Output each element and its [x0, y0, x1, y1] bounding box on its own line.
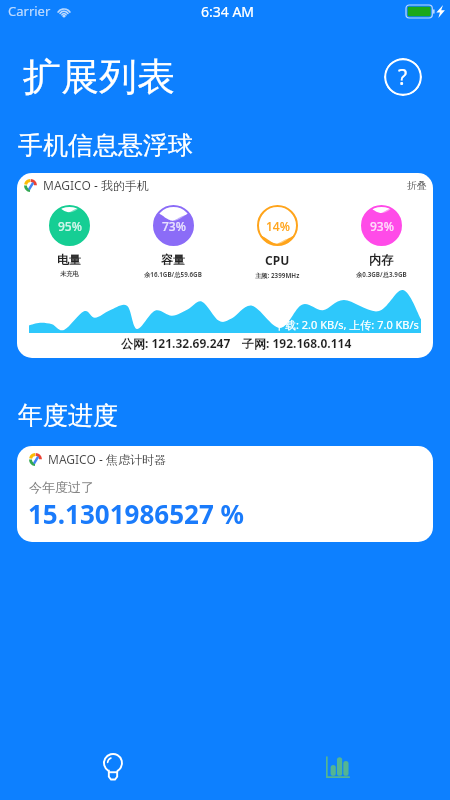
- staticText: 电量: [57, 252, 81, 267]
- staticText: 扩展列表: [23, 53, 175, 101]
- staticText: 余16.1GB/总59.6GB: [144, 270, 202, 279]
- staticText: 6:34 AM: [201, 2, 255, 21]
- staticText: ?: [398, 63, 408, 92]
- staticText: 内存: [369, 252, 393, 267]
- button[interactable]: MAGICO - 我的手机: [17, 173, 433, 358]
- staticText: 95%: [58, 218, 82, 234]
- staticText: 15.1301986527 %: [28, 496, 244, 530]
- staticText: 14%: [266, 218, 290, 234]
- staticText: 容量: [161, 252, 185, 267]
- staticText: MAGICO - 焦虑计时器: [48, 451, 166, 467]
- staticText: 手机信息悬浮球: [18, 130, 193, 161]
- staticText: 余0.3GB/总3.9GB: [356, 270, 407, 279]
- button[interactable]: Help: [384, 58, 422, 96]
- staticText: CPU: [265, 252, 290, 268]
- staticText: 73%: [162, 218, 186, 234]
- staticText: 年度进度: [18, 400, 118, 431]
- staticText: 子网: 192.168.0.114: [242, 335, 352, 351]
- button[interactable]: Tips: [0, 734, 225, 800]
- staticText: Carrier: [8, 2, 51, 20]
- button[interactable]: MAGICO - 焦虑计时器: [17, 446, 433, 542]
- staticText: 公网: 121.32.69.247: [121, 335, 231, 351]
- staticText: 下载: 2.0 KB/s, 上传: 7.0 KB/s: [274, 317, 419, 332]
- staticText: MAGICO - 我的手机: [43, 177, 149, 193]
- staticText: 折叠: [407, 179, 427, 192]
- button[interactable]: Statistics: [225, 734, 450, 800]
- staticText: 今年度过了: [29, 479, 94, 495]
- staticText: 主频: 2399MHz: [255, 271, 300, 280]
- staticText: 未充电: [60, 270, 79, 278]
- staticText: 93%: [370, 218, 394, 234]
